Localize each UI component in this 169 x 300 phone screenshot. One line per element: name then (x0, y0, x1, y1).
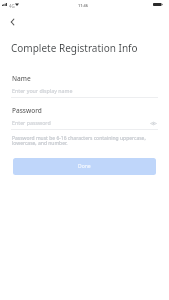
staticText: 11:46 (78, 3, 88, 8)
button[interactable]: Enter your display name (11, 83, 158, 96)
staticText: 4G (9, 3, 15, 9)
staticText: Password (12, 106, 42, 115)
staticText: Enter your display name (12, 87, 73, 94)
button[interactable]: Enter password (11, 115, 158, 128)
staticText: Enter password (12, 119, 51, 126)
button[interactable]: Show password (148, 118, 159, 129)
staticText: Password must be 6-16 characters contain… (12, 135, 146, 142)
staticText: Done (78, 163, 91, 170)
button[interactable]: Back (4, 15, 20, 29)
staticText: lowercase, and number. (12, 140, 68, 147)
staticText: Complete Registration Info (11, 41, 138, 55)
button[interactable]: Done (13, 158, 156, 175)
staticText: Name (12, 74, 31, 83)
